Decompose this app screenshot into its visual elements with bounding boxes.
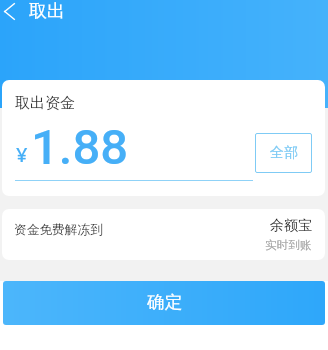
staticText: 取出 xyxy=(29,0,65,23)
button[interactable]: 确定 xyxy=(3,281,325,325)
staticText: 余额宝 xyxy=(270,217,312,235)
staticText: 资金免费解冻到 xyxy=(14,222,103,238)
staticText: 1.88 xyxy=(31,119,129,167)
button[interactable]: 资金免费解冻到 xyxy=(2,209,325,260)
staticText: ¥ xyxy=(16,141,28,168)
staticText: 确定 xyxy=(147,291,182,313)
button[interactable]: Back xyxy=(0,0,18,23)
staticText: 全部 xyxy=(270,144,298,162)
button[interactable]: 全部 xyxy=(255,133,312,173)
staticText: 实时到账 xyxy=(265,238,312,253)
staticText: 取出资金 xyxy=(15,94,75,113)
